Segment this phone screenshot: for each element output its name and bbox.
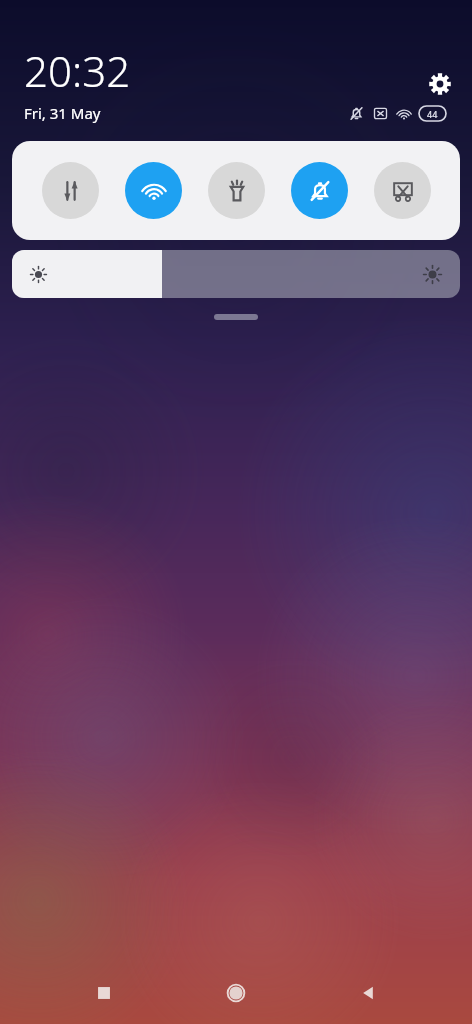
- staticText: Fri, 31 May: [24, 103, 101, 123]
- staticText: 44: [427, 108, 438, 120]
- button[interactable]: [214, 314, 258, 320]
- button[interactable]: Silent mode: [291, 162, 348, 219]
- button[interactable]: Back: [344, 969, 392, 1017]
- button[interactable]: Mobile data: [42, 162, 99, 219]
- button[interactable]: Flashlight: [208, 162, 265, 219]
- button[interactable]: Screenshot: [374, 162, 431, 219]
- staticText: 20:32: [24, 42, 131, 99]
- button[interactable]: Recents: [80, 969, 128, 1017]
- button[interactable]: Wi-Fi: [125, 162, 182, 219]
- button[interactable]: Settings: [424, 68, 456, 100]
- button[interactable]: [12, 250, 460, 298]
- button[interactable]: Home: [212, 969, 260, 1017]
